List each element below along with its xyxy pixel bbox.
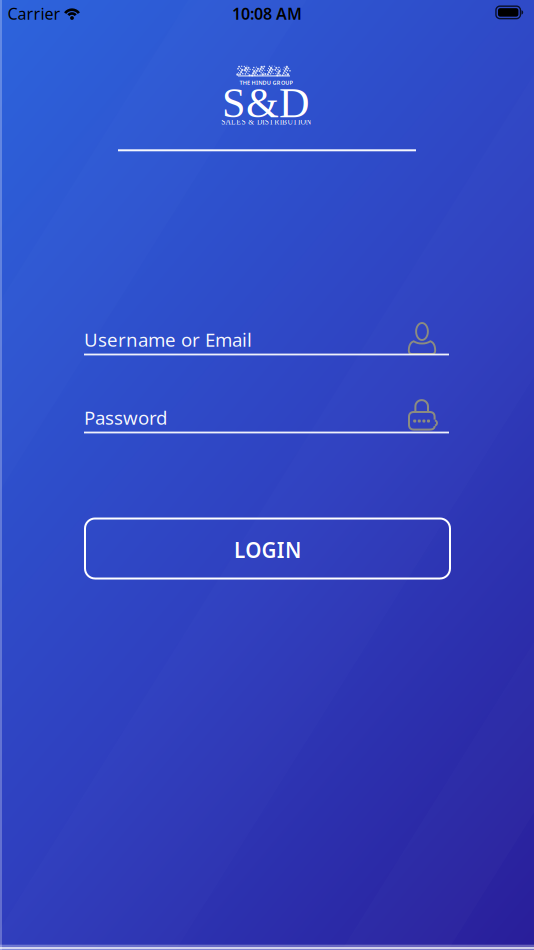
- staticText: SALES & DISTRIBUTION: [221, 118, 311, 126]
- staticText: Carrier: [7, 3, 60, 24]
- staticText: LOGIN: [234, 536, 301, 564]
- button[interactable]: LOGIN: [85, 518, 450, 578]
- button[interactable]: Password: [84, 394, 449, 438]
- staticText: Username or Email: [84, 327, 252, 352]
- staticText: Password: [84, 405, 167, 430]
- staticText: 10:08 AM: [232, 3, 302, 24]
- staticText: S&D: [222, 80, 310, 126]
- staticText: THE HINDU GROUP: [239, 79, 293, 86]
- button[interactable]: Username or Email: [84, 316, 449, 360]
